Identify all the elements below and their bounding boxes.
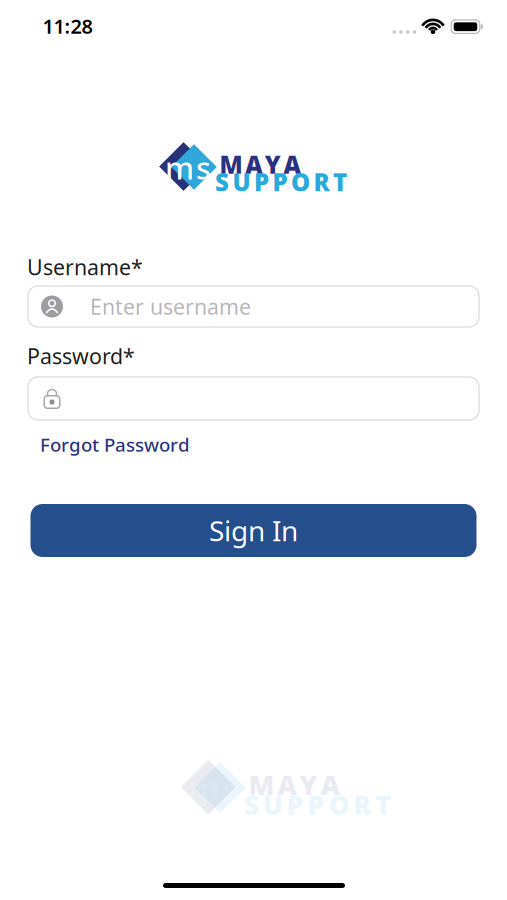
staticText: U <box>232 166 250 198</box>
staticText: A <box>245 149 262 180</box>
staticText: Y <box>265 149 281 180</box>
staticText: O <box>328 787 349 822</box>
staticText: Sign In <box>209 512 298 549</box>
staticText: T <box>333 166 347 198</box>
staticText: P <box>254 166 269 198</box>
staticText: Enter username <box>90 292 251 321</box>
staticText: U <box>263 787 283 822</box>
button[interactable] <box>28 377 479 420</box>
staticText: Username* <box>27 253 143 281</box>
staticText: S <box>215 166 229 198</box>
staticText: m <box>165 147 194 188</box>
staticText: S <box>244 787 259 822</box>
button[interactable]: Enter username <box>28 286 479 327</box>
staticText: m <box>188 766 220 810</box>
button[interactable]: Forgot Password <box>40 432 190 457</box>
staticText: P <box>272 166 287 198</box>
staticText: P <box>307 787 324 822</box>
staticText: Y <box>299 767 317 802</box>
staticText: M <box>248 767 274 802</box>
staticText: s <box>222 766 238 810</box>
staticText: A <box>277 767 296 802</box>
staticText: Forgot Password <box>40 432 190 457</box>
staticText: O <box>291 166 310 198</box>
button[interactable]: Sign In <box>30 504 476 557</box>
staticText: A <box>320 767 339 802</box>
staticText: T <box>375 787 391 822</box>
staticText: s <box>196 147 211 188</box>
staticText: A <box>283 149 300 180</box>
staticText: M <box>219 149 242 180</box>
staticText: 11:28 <box>42 13 92 39</box>
staticText: R <box>313 166 329 198</box>
staticText: P <box>287 787 304 822</box>
staticText: Password* <box>27 342 135 370</box>
staticText: R <box>353 787 371 822</box>
